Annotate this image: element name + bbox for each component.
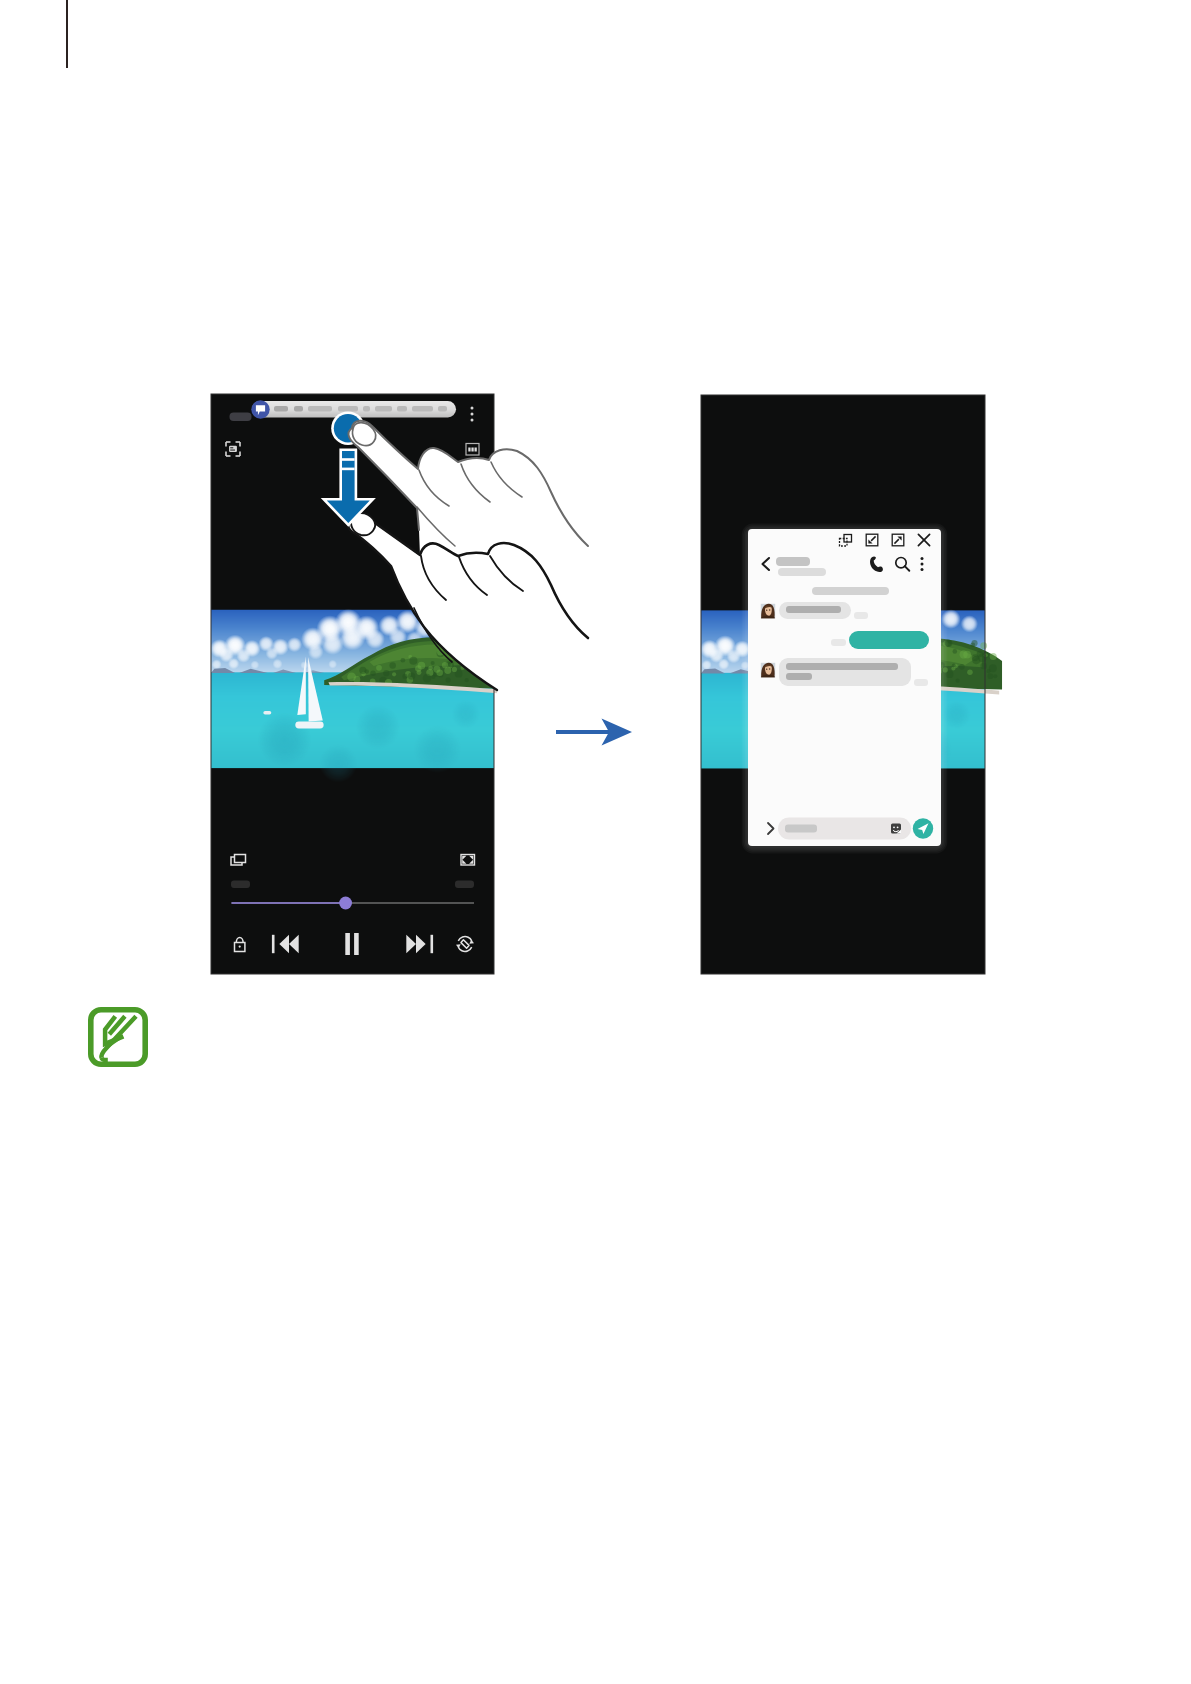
button[interactable]: Next [402,930,432,958]
button[interactable]: Expand [760,818,778,840]
button[interactable]: Auto rotate [452,930,478,958]
button[interactable]: Call [866,554,888,576]
button[interactable]: Pop-up view [836,530,856,550]
button[interactable]: Previous [275,930,305,958]
button[interactable]: More options [466,406,480,424]
button[interactable]: Stickers [884,820,902,838]
button[interactable]: Message [778,817,911,840]
button[interactable]: Pop-up player [229,852,249,869]
button[interactable]: Notification [249,402,461,428]
button[interactable]: More options [913,554,931,576]
button[interactable]: Pause [337,928,367,960]
button[interactable]: Send [912,817,934,839]
button[interactable]: Back [756,554,776,574]
button[interactable]: Full screen [459,852,477,868]
button[interactable]: Maximise [888,530,908,550]
button[interactable]: Minimise [862,530,882,550]
button[interactable]: Close [914,530,934,550]
button[interactable]: Smart view [226,441,242,457]
button[interactable]: QHD quality [464,442,481,457]
button[interactable]: Lock [228,930,252,958]
button[interactable]: Search [891,554,913,576]
